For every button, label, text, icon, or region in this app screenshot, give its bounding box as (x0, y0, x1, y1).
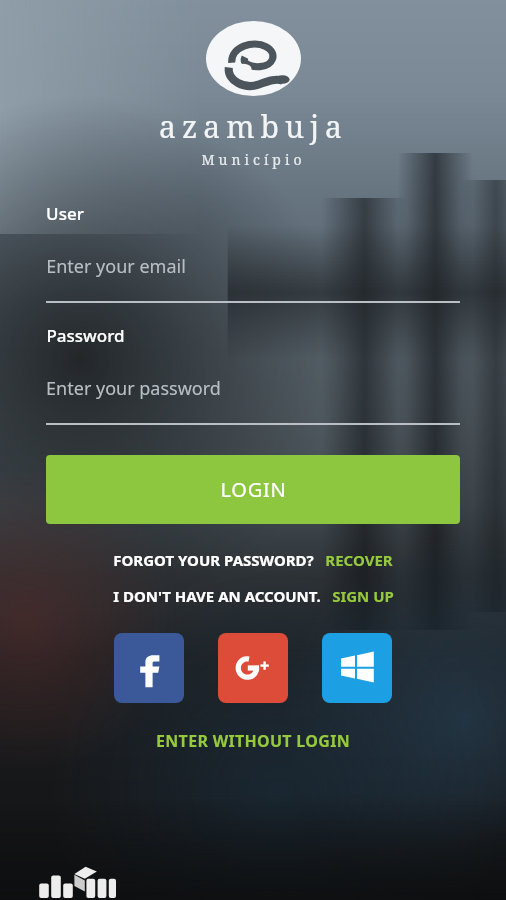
staticText: Município (201, 150, 306, 169)
button[interactable]: ENTER WITHOUT LOGIN (156, 730, 350, 752)
staticText: RECOVER (325, 550, 393, 570)
button[interactable]: SIGN UP (332, 586, 394, 606)
staticText: Password (46, 324, 125, 347)
staticText: azambuja (159, 106, 348, 147)
button[interactable]: Enter your email (46, 254, 460, 279)
button[interactable]: RECOVER (325, 550, 393, 570)
button[interactable]: Enter your password (46, 376, 460, 401)
staticText: I DON'T HAVE AN ACCOUNT. (113, 586, 321, 606)
button[interactable]: Sign in with Facebook (114, 633, 184, 703)
staticText: SIGN UP (332, 586, 394, 606)
staticText: LOGIN (220, 476, 287, 503)
staticText: FORGOT YOUR PASSWORD? (113, 550, 314, 570)
staticText: Enter your password (46, 376, 221, 401)
button[interactable]: Sign in with Google Plus (218, 633, 288, 703)
staticText: User (46, 202, 84, 225)
button[interactable]: Sign in with Microsoft (322, 633, 392, 703)
staticText: Enter your email (46, 254, 186, 279)
button[interactable]: LOGIN (46, 455, 460, 524)
staticText: ENTER WITHOUT LOGIN (156, 730, 350, 752)
